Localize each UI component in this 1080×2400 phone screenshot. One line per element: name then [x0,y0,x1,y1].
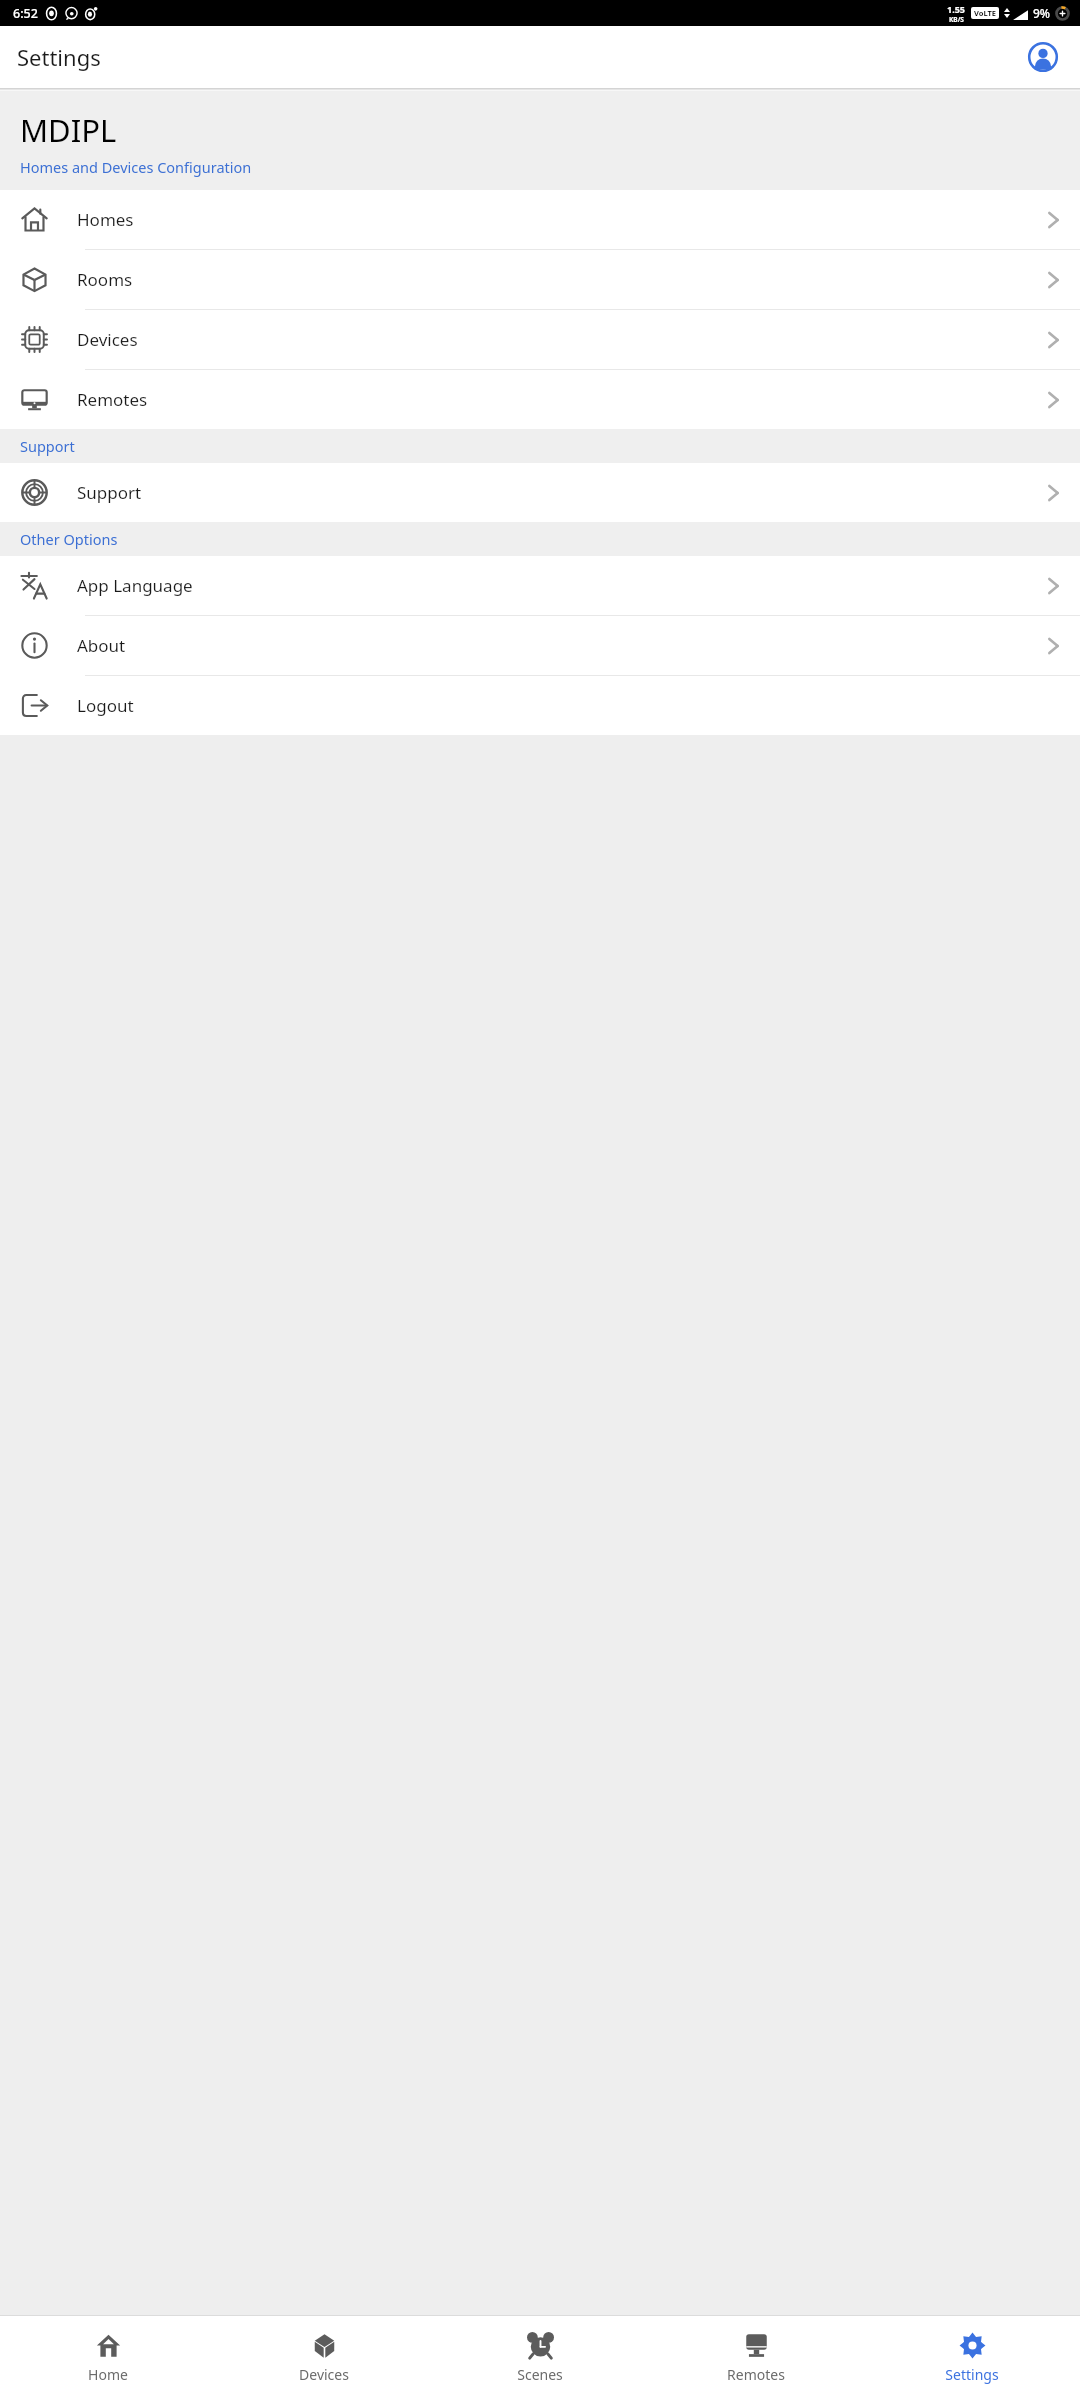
staticText: Scenes [517,2365,563,2384]
button[interactable]: Homes [0,190,1080,249]
staticText: VoLTE [974,8,996,18]
button[interactable]: App Language [0,556,1080,615]
staticText: Devices [299,2365,349,2384]
button[interactable]: Logout [0,676,1080,735]
staticText: KB/S [949,15,964,24]
staticText: Remotes [77,388,148,411]
staticText: About [77,634,126,657]
staticText: Homes and Devices Configuration [20,157,252,177]
staticText: Devices [77,328,138,351]
button[interactable]: Home [0,2316,216,2400]
button[interactable]: Rooms [0,250,1080,309]
staticText: Remotes [727,2365,785,2384]
staticText: Homes [77,208,134,231]
staticText: Settings [945,2365,999,2384]
staticText: 6:52 [13,5,38,22]
staticText: Other Options [20,529,118,549]
staticText: Home [88,2365,128,2384]
button[interactable]: Devices [0,310,1080,369]
staticText: MDIPL [20,109,117,151]
button[interactable]: Account [1022,36,1064,78]
staticText: 9% [1033,5,1051,21]
staticText: App Language [77,574,193,597]
staticText: Logout [77,694,134,717]
button[interactable]: About [0,616,1080,675]
staticText: Settings [17,42,101,72]
button[interactable]: Support [0,463,1080,522]
staticText: Support [20,436,75,456]
button[interactable]: Devices [216,2316,432,2400]
button[interactable]: Remotes [0,370,1080,429]
staticText: Support [77,481,142,504]
staticText: 1.55 [947,3,965,15]
button[interactable]: Remotes [648,2316,864,2400]
button[interactable]: Scenes [432,2316,648,2400]
button[interactable]: Settings [864,2316,1080,2400]
staticText: Rooms [77,268,133,291]
